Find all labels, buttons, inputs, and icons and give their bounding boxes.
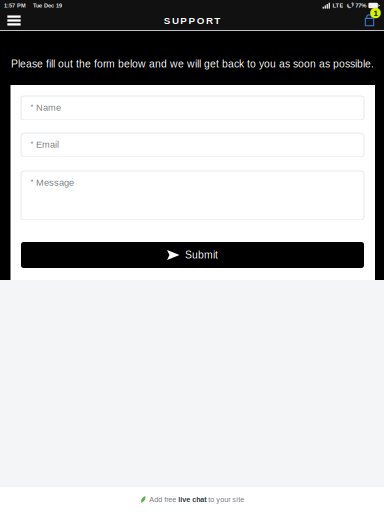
staticText: * [30,177,33,186]
staticText: live chat [178,495,206,503]
staticText: Tue Dec 19 [33,2,62,9]
staticText: * [30,102,33,111]
staticText: Email [36,139,59,150]
staticText: Name [36,102,61,113]
button[interactable]: Cart, 1 item [360,11,379,30]
staticText: LTE [332,2,343,9]
button[interactable]: * [21,96,364,120]
staticText: Message [36,177,74,188]
staticText: Add free [149,495,178,503]
staticText: Submit [185,249,218,261]
staticText: * [30,139,33,148]
staticText: 77% [355,2,366,9]
button[interactable]: Add free [0,487,384,512]
staticText: to your site [206,495,244,503]
staticText: 1 [373,8,377,17]
button[interactable]: Menu [3,11,25,30]
button[interactable]: * [21,133,364,157]
button[interactable]: Submit [21,242,364,268]
button[interactable]: * [21,171,364,220]
staticText: 1:57 PM [4,2,26,9]
staticText: Please fill out the form below and we wi… [11,58,374,70]
staticText: SUPPORT [164,15,220,26]
